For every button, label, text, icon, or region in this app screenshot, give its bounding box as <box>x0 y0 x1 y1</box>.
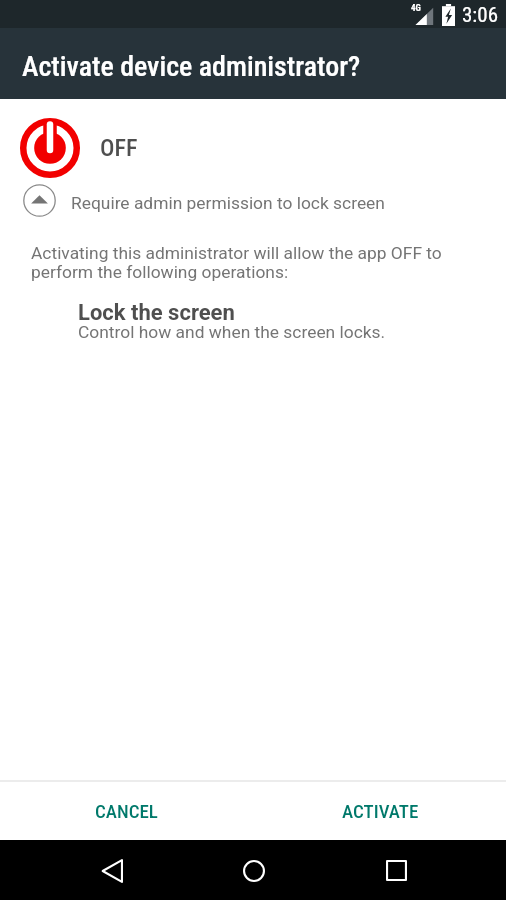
button[interactable]: Recent apps <box>368 842 425 899</box>
staticText: CANCEL <box>95 800 158 822</box>
staticText: Control how and when the screen locks. <box>78 322 386 342</box>
staticText: Activating this administrator will allow… <box>31 243 445 283</box>
staticText: Activate device administrator? <box>22 50 361 83</box>
staticText: Require admin permission to lock screen <box>71 193 385 213</box>
button[interactable]: Home <box>225 842 282 899</box>
staticText: 4G <box>411 3 421 14</box>
staticText: ACTIVATE <box>342 800 419 822</box>
staticText: 3:06 <box>462 3 499 28</box>
button[interactable]: Require admin permission to lock screen <box>0 179 506 222</box>
staticText: OFF <box>100 134 138 162</box>
button[interactable]: ACTIVATE <box>253 782 506 840</box>
staticText: Lock the screen <box>78 300 235 326</box>
button[interactable]: Back <box>83 842 140 899</box>
button[interactable]: CANCEL <box>0 782 253 840</box>
